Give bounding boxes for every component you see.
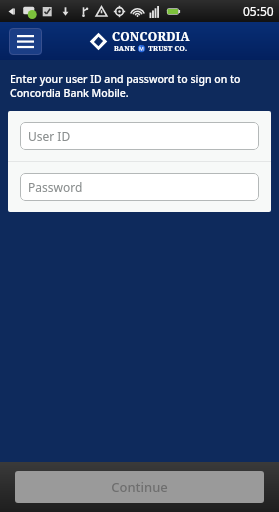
button[interactable]: Continue [15,471,264,503]
staticText: Enter your user ID and password to sign … [10,72,241,100]
staticText: Password [28,179,83,195]
staticText: User ID [28,128,71,144]
button[interactable]: Open navigation menu [9,28,42,55]
staticText: Continue [111,478,168,496]
staticText: BANK Ⓜ TRUST CO. [114,44,188,54]
button[interactable]: User ID [20,122,259,150]
staticText: CONCORDIA [112,28,190,44]
button[interactable]: Password [20,173,259,201]
staticText: 05:50 [243,3,274,19]
